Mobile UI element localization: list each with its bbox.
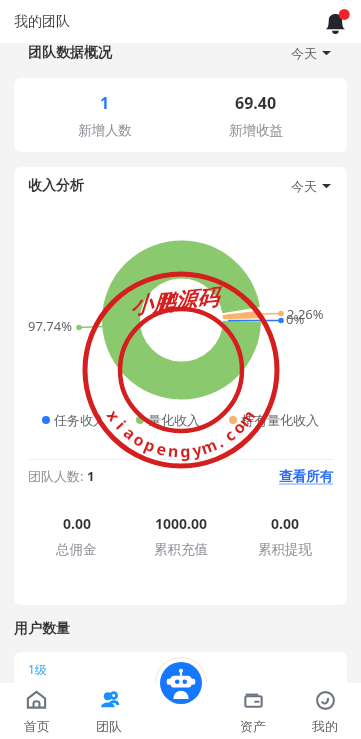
staticText: 查看所有 — [279, 468, 333, 485]
staticText: 0% — [286, 310, 305, 328]
staticText: 团队数据概况 — [28, 44, 112, 62]
staticText: 1 — [100, 92, 110, 114]
staticText: 首页 — [24, 718, 50, 734]
staticText: 97.74% — [28, 317, 73, 335]
staticText: 累积充值 — [154, 541, 208, 558]
staticText: 2.26% — [287, 305, 324, 323]
button[interactable]: 资产 — [217, 683, 289, 739]
button[interactable]: 首页 — [0, 683, 73, 739]
staticText: 量化收入 — [148, 412, 200, 428]
staticText: 总佣金 — [56, 541, 97, 558]
button[interactable]: 我的 — [289, 683, 361, 739]
staticText: 新增人数 — [78, 122, 132, 139]
button[interactable]: 团队 — [73, 683, 145, 739]
staticText: 0.00 — [271, 514, 299, 533]
staticText: 0.00 — [63, 514, 91, 533]
staticText: 今天 — [291, 45, 317, 61]
staticText: 1级 — [28, 661, 47, 677]
staticText: 用户数量 — [14, 620, 70, 638]
staticText: 团队人数: — [28, 467, 87, 485]
staticText: 今天 — [291, 178, 317, 194]
staticText: 1 — [87, 467, 95, 485]
staticText: 新增收益 — [229, 122, 283, 139]
staticText: 1000.00 — [155, 514, 207, 533]
button[interactable]: AI assistant — [160, 662, 202, 704]
button[interactable]: 查看所有 — [279, 468, 333, 485]
staticText: 69.40 — [235, 92, 277, 114]
staticText: 资产 — [240, 718, 266, 734]
staticText: 团队 — [96, 718, 122, 734]
staticText: 我的 — [312, 718, 338, 734]
button[interactable]: 今天 — [291, 45, 331, 61]
staticText: 收入分析 — [28, 177, 84, 195]
staticText: 任务收入 — [54, 412, 106, 428]
button[interactable]: Notifications — [324, 9, 350, 35]
staticText: 持有量化收入 — [241, 412, 319, 428]
staticText: 我的团队 — [14, 13, 70, 31]
button[interactable]: 今天 — [291, 178, 331, 194]
staticText: 累积提现 — [258, 541, 312, 558]
